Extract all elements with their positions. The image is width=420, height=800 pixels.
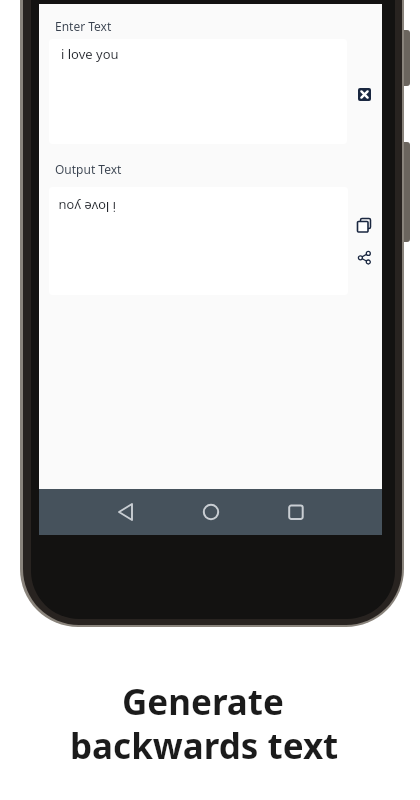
button[interactable] [196, 497, 226, 527]
staticText: Enter Text [55, 18, 112, 34]
button[interactable] [355, 217, 373, 235]
staticText: Output Text [55, 161, 122, 177]
staticText: i love you [58, 198, 116, 216]
button[interactable] [281, 497, 311, 527]
staticText: Generate [122, 678, 284, 726]
button[interactable]: i love you [49, 39, 347, 144]
button[interactable] [358, 88, 371, 101]
staticText: i love you [61, 45, 119, 63]
button[interactable] [112, 497, 142, 527]
button[interactable] [357, 250, 373, 266]
staticText: backwards text [70, 722, 339, 770]
